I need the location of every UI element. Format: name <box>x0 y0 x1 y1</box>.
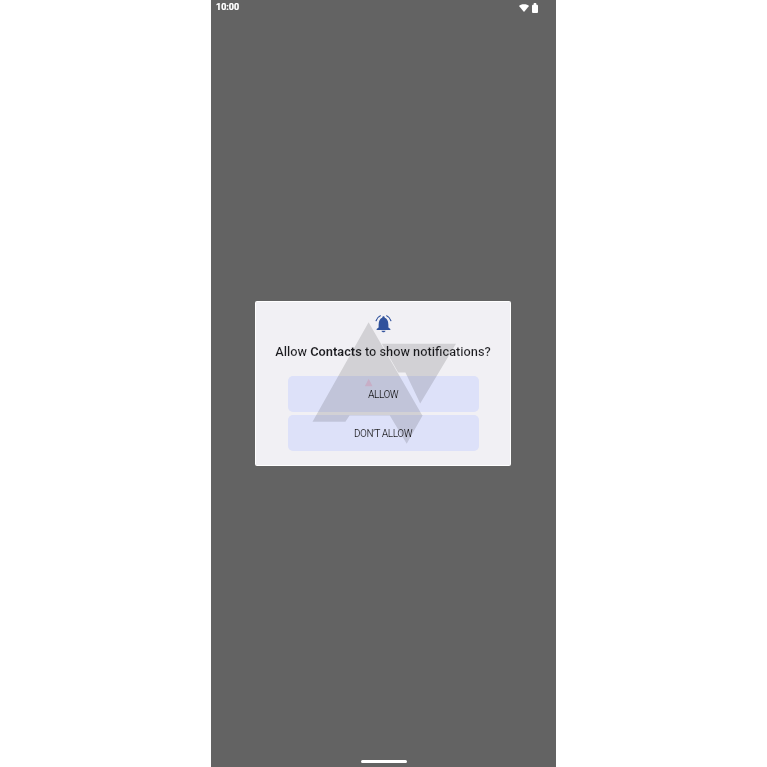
staticText: ALLOW <box>368 389 399 401</box>
staticText: Allow Contacts to show notifications? <box>275 344 491 359</box>
button[interactable]: ALLOW <box>288 376 479 412</box>
staticText: 10:00 <box>216 2 240 13</box>
staticText: DON’T ALLOW <box>354 428 413 440</box>
button[interactable]: DON’T ALLOW <box>288 415 479 451</box>
